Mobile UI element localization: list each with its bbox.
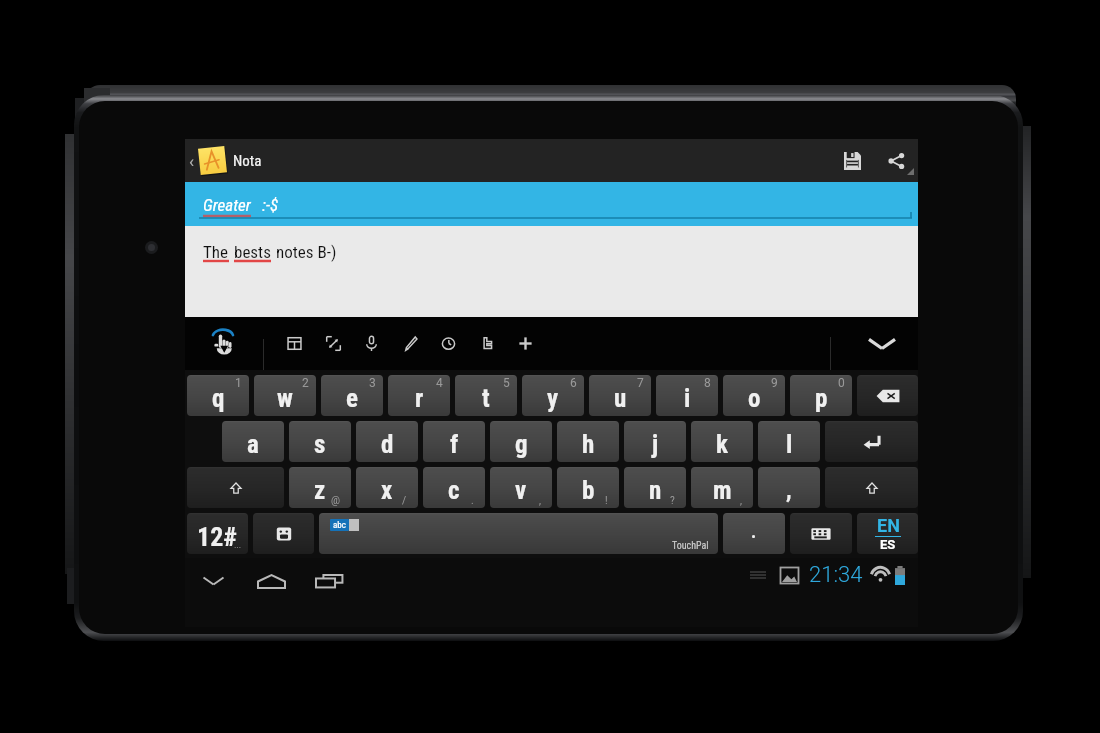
button[interactable]: v (490, 467, 552, 508)
button[interactable]: i (656, 375, 718, 416)
staticText: d (381, 430, 394, 459)
staticText: a (247, 430, 259, 459)
staticText: notes B-) (276, 242, 337, 262)
staticText: ··· (234, 543, 242, 554)
button[interactable]: o (723, 375, 785, 416)
staticText: g (515, 430, 528, 459)
button[interactable]: m (691, 467, 753, 508)
button[interactable]: Space (319, 513, 718, 554)
button[interactable]: , (758, 467, 820, 508)
staticText: 8 (704, 376, 711, 390)
button[interactable]: b (557, 467, 619, 508)
button[interactable]: resize (318, 317, 348, 370)
staticText: Nota (233, 152, 262, 170)
staticText: Greater (203, 195, 251, 215)
button[interactable]: Back (192, 560, 234, 602)
button[interactable]: g (490, 421, 552, 462)
button[interactable]: l (758, 421, 820, 462)
staticText: v (515, 476, 527, 505)
button[interactable] (825, 421, 918, 462)
staticText: 9 (771, 376, 778, 390)
staticText: x (381, 476, 393, 505)
button[interactable]: p (790, 375, 852, 416)
button[interactable]: · (723, 513, 785, 554)
staticText: The (203, 242, 229, 262)
staticText: abc (333, 520, 346, 531)
staticText: 3 (369, 376, 376, 390)
staticText: 21:34 (809, 562, 863, 588)
button[interactable]: n (624, 467, 686, 508)
button[interactable]: u (589, 375, 651, 416)
button[interactable] (825, 467, 918, 508)
button[interactable] (253, 513, 314, 554)
button[interactable]: z (289, 467, 351, 508)
button[interactable] (857, 375, 918, 416)
button[interactable]: curve (472, 317, 502, 370)
button[interactable] (187, 467, 284, 508)
button[interactable]: s (289, 421, 351, 462)
button[interactable]: c (423, 467, 485, 508)
staticText: 6 (570, 376, 577, 390)
staticText: 12# (197, 522, 238, 552)
staticText: z (314, 476, 326, 505)
button[interactable]: f (423, 421, 485, 462)
button[interactable]: j (624, 421, 686, 462)
staticText: . (471, 495, 474, 507)
staticText: k (716, 430, 728, 459)
button[interactable]: r (388, 375, 450, 416)
button[interactable]: k (691, 421, 753, 462)
staticText: 5 (503, 376, 510, 390)
button[interactable]: d (356, 421, 418, 462)
button[interactable]: Save (830, 139, 874, 182)
staticText: bests (234, 242, 271, 262)
button[interactable]: a (222, 421, 284, 462)
staticText: 7 (637, 376, 644, 390)
button[interactable] (790, 513, 852, 554)
button[interactable]: q (187, 375, 249, 416)
button[interactable]: Share (874, 139, 918, 182)
staticText: r (415, 384, 424, 413)
button[interactable]: clock (433, 317, 463, 370)
button[interactable]: h (557, 421, 619, 462)
button[interactable]: x (356, 467, 418, 508)
button[interactable]: Recents (308, 560, 350, 602)
staticText: f (450, 430, 459, 459)
button[interactable]: y (522, 375, 584, 416)
button[interactable]: The (185, 226, 918, 317)
button[interactable]: EN (857, 513, 918, 554)
staticText: 4 (436, 376, 443, 390)
staticText: j (652, 430, 659, 459)
staticText: b (582, 476, 595, 505)
staticText: p (815, 384, 828, 413)
staticText: ES (880, 537, 896, 552)
button[interactable]: t (455, 375, 517, 416)
staticText: ! (605, 495, 608, 507)
staticText: ‹ (189, 151, 195, 171)
button[interactable]: ‹ (185, 144, 272, 177)
staticText: q (212, 384, 225, 413)
button[interactable]: plus (510, 317, 540, 370)
staticText: · (751, 526, 757, 547)
button[interactable]: w (254, 375, 316, 416)
button[interactable]: Home (250, 560, 292, 602)
staticText: o (748, 384, 761, 413)
staticText: , (740, 495, 742, 507)
staticText: c (448, 476, 460, 505)
button[interactable]: e (321, 375, 383, 416)
staticText: 0 (838, 376, 845, 390)
staticText: 2 (302, 376, 309, 390)
button[interactable]: Greater (185, 182, 918, 226)
button[interactable]: pen (395, 317, 425, 370)
staticText: ? (670, 495, 675, 507)
staticText: s (314, 430, 326, 459)
button[interactable]: 12# (187, 513, 248, 554)
button[interactable]: Hide keyboard (845, 317, 918, 370)
staticText: n (649, 476, 662, 505)
button[interactable]: mic (356, 317, 386, 370)
staticText: 1 (235, 376, 242, 390)
staticText: h (582, 430, 595, 459)
staticText: , (786, 477, 792, 504)
button[interactable]: grid (279, 317, 309, 370)
button[interactable]: TouchPal (195, 319, 253, 370)
staticText: y (547, 384, 559, 413)
